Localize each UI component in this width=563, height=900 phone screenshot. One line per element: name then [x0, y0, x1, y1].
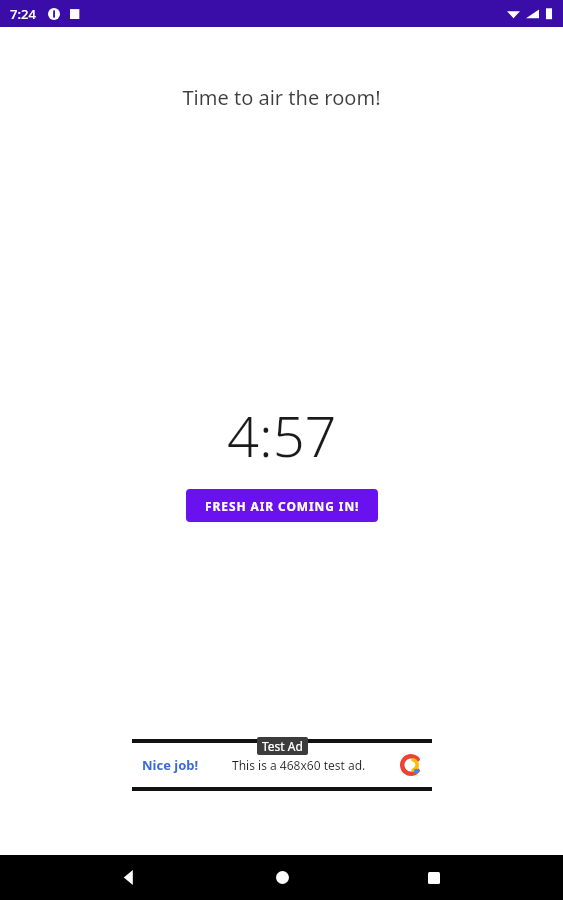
staticText: Test Ad — [262, 738, 303, 754]
staticText: Nice job! — [142, 756, 199, 774]
other: AdMob — [400, 754, 422, 776]
button[interactable]: Home — [258, 855, 306, 900]
staticText: FRESH AIR COMING IN! — [205, 498, 360, 514]
button[interactable]: Back — [105, 855, 153, 900]
button[interactable]: FRESH AIR COMING IN! — [186, 489, 378, 522]
button[interactable]: Nice job! — [132, 739, 432, 791]
staticText: 7:24 — [10, 5, 36, 23]
button[interactable]: Recents — [410, 855, 458, 900]
staticText: This is a 468x60 test ad. — [232, 757, 366, 773]
staticText: Time to air the room! — [182, 84, 381, 111]
staticText: 4:57 — [227, 397, 337, 473]
